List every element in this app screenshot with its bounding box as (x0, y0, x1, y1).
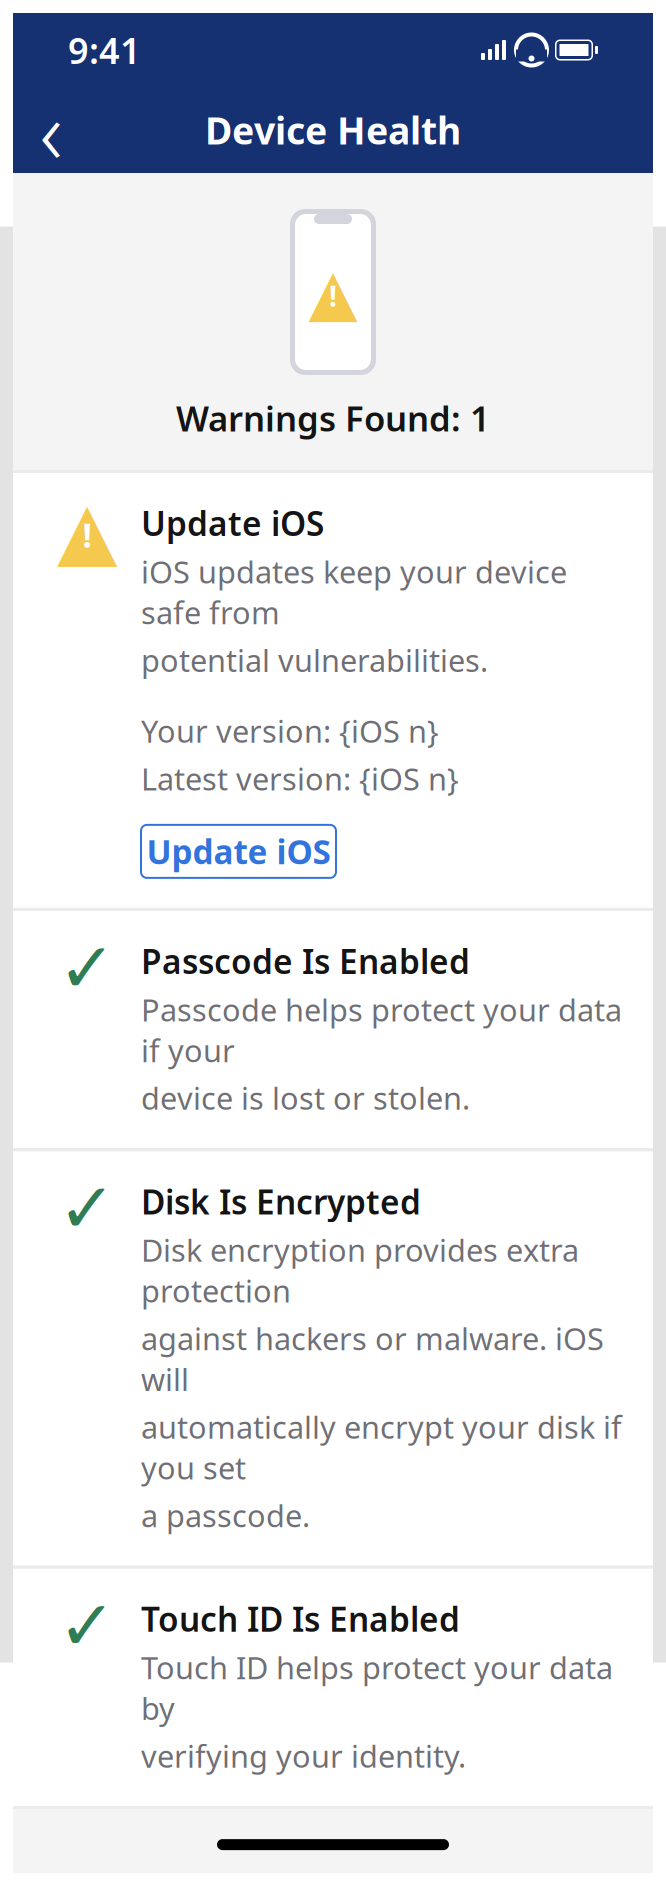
staticText: automatically encrypt your disk if you s… (141, 1406, 622, 1488)
staticText: ! (329, 277, 337, 314)
staticText: Warnings Found: 1 (176, 395, 490, 441)
staticText: Disk encryption provides extra protectio… (141, 1230, 579, 1311)
staticText: iOS updates keep your device safe from (141, 551, 567, 633)
staticText: verifying your identity. (141, 1735, 466, 1776)
staticText: Update iOS (146, 829, 330, 874)
staticText: ! (82, 513, 91, 557)
button[interactable]: Back (23, 96, 79, 164)
staticText: Your version: {iOS n} (141, 710, 439, 751)
staticText: Touch ID helps protect your data by (141, 1647, 613, 1728)
staticText: a passcode. (141, 1495, 310, 1536)
staticText: against hackers or malware. iOS will (141, 1318, 604, 1399)
staticText: Disk Is Encrypted (141, 1179, 421, 1224)
staticText: Latest version: {iOS n} (141, 758, 459, 799)
staticText: 9:41 (68, 26, 141, 74)
staticText: Passcode Is Enabled (141, 939, 470, 983)
staticText: ▲ (308, 256, 357, 328)
staticText: potential vulnerabilities. (141, 640, 488, 680)
staticText: Passcode helps protect your data if your (141, 989, 622, 1071)
staticText: ‹ (39, 72, 62, 188)
staticText: Touch ID Is Enabled (141, 1597, 460, 1641)
staticText: Update iOS (141, 501, 324, 545)
staticText: Device Health (205, 105, 461, 155)
staticText: device is lost or stolen. (141, 1078, 470, 1118)
button[interactable]: Update iOS (141, 825, 336, 878)
staticText: ✓ (58, 928, 116, 1007)
staticText: ✓ (58, 1169, 116, 1248)
staticText: ▲ (57, 485, 117, 575)
staticText: ✓ (58, 1586, 116, 1665)
